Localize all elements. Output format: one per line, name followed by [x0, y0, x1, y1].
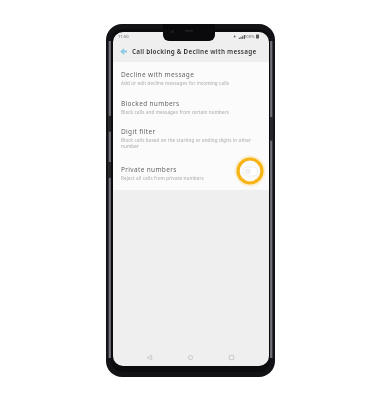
staticText: Blocked numbers	[121, 99, 180, 108]
button[interactable]: Recent apps	[211, 350, 252, 365]
staticText: Digit filter	[121, 127, 156, 136]
staticText: Private numbers	[121, 165, 177, 174]
button[interactable]: Home	[170, 350, 211, 365]
button[interactable]: Navigate up	[117, 45, 129, 57]
staticText: Reject all calls from private numbers	[121, 175, 204, 181]
staticText: Block calls and messages from certain nu…	[121, 109, 230, 115]
staticText: Decline with message	[121, 70, 195, 79]
button[interactable]: Blocked numbers	[113, 93, 269, 121]
button[interactable]: Private numbers toggle	[236, 157, 264, 185]
button[interactable]: Digit filter	[113, 121, 269, 156]
staticText: Call blocking & Decline with message	[132, 47, 257, 56]
button[interactable]: Back	[129, 350, 170, 365]
staticText: Add or edit decline messages for incomin…	[121, 80, 230, 86]
staticText: Block calls based on the starting or end…	[121, 137, 255, 150]
staticText: 100%	[244, 34, 255, 40]
button[interactable]: Decline with message	[113, 62, 269, 93]
staticText: 11:50	[118, 34, 129, 40]
button[interactable]: Private numbers	[113, 156, 269, 190]
